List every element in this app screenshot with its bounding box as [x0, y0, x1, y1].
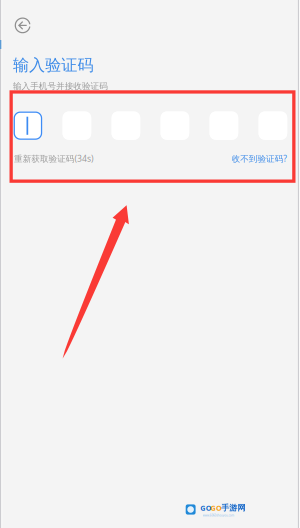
staticText: GO — [210, 503, 239, 528]
staticText: 输入手机号并接收验证码 — [13, 81, 277, 111]
staticText: www.6060shouyou.com — [202, 513, 300, 528]
button[interactable]: 收不到验证码? — [0, 0, 154, 33]
staticText: 重新获取验证码(34s) — [14, 153, 235, 185]
staticText: GO — [200, 503, 229, 528]
staticText: 收不到验证码? — [232, 153, 300, 185]
button[interactable]: Digit 1 — [14, 111, 42, 140]
button[interactable]: Back — [0, 0, 300, 528]
staticText: 输入验证码 — [13, 55, 173, 95]
staticText: 手游网 — [221, 503, 278, 526]
